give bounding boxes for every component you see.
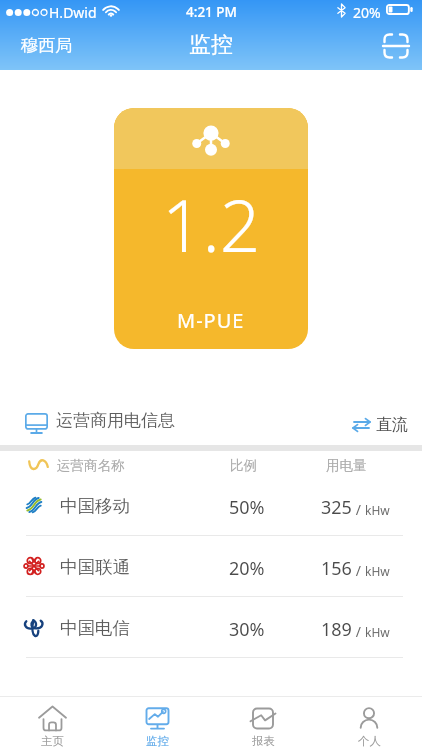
- staticText: 运营商名称: [57, 457, 125, 474]
- button[interactable]: 中国联通: [0, 536, 422, 597]
- staticText: 监控: [146, 734, 169, 748]
- button[interactable]: Scan QR code: [378, 28, 414, 64]
- button[interactable]: 直流: [352, 404, 408, 446]
- button[interactable]: 1.2: [114, 108, 308, 349]
- staticText: 运营商用电信息: [56, 410, 175, 431]
- staticText: 监控: [189, 31, 233, 59]
- staticText: 比例: [230, 457, 257, 474]
- staticText: 189: [321, 617, 352, 642]
- staticText: kHw: [365, 563, 390, 579]
- button[interactable]: 主页: [0, 696, 105, 750]
- button[interactable]: 穆西局: [12, 30, 81, 61]
- staticText: 个人: [358, 734, 381, 748]
- staticText: kHw: [365, 624, 390, 640]
- staticText: 20%: [229, 556, 265, 581]
- staticText: /: [352, 561, 365, 580]
- staticText: 中国联通: [60, 556, 130, 578]
- button[interactable]: 个人: [316, 696, 422, 750]
- staticText: 直流: [376, 415, 408, 435]
- staticText: 主页: [41, 734, 64, 748]
- staticText: 中国移动: [60, 495, 130, 517]
- staticText: 156: [321, 556, 352, 581]
- button[interactable]: 报表: [210, 696, 316, 750]
- staticText: kHw: [365, 502, 390, 518]
- staticText: /: [352, 500, 365, 519]
- staticText: 穆西局: [21, 35, 72, 56]
- button[interactable]: 监控: [105, 696, 210, 750]
- staticText: M-PUE: [177, 307, 245, 334]
- staticText: 20%: [353, 3, 381, 22]
- button[interactable]: 中国电信: [0, 597, 422, 658]
- staticText: 报表: [252, 734, 275, 748]
- staticText: 4:21 PM: [186, 3, 237, 21]
- staticText: 30%: [229, 617, 265, 642]
- button[interactable]: 中国移动: [0, 475, 422, 536]
- staticText: 用电量: [326, 457, 367, 474]
- staticText: H.Dwid: [49, 3, 97, 22]
- staticText: 50%: [229, 495, 265, 520]
- staticText: 中国电信: [60, 617, 130, 639]
- staticText: /: [352, 622, 365, 641]
- staticText: 325: [321, 495, 352, 520]
- staticText: 1.2: [162, 176, 261, 273]
